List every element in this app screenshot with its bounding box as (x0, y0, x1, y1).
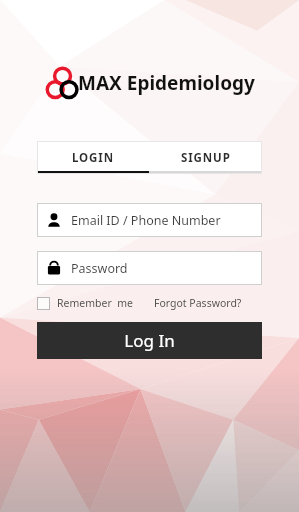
staticText: Email ID / Phone Number (71, 212, 221, 229)
button[interactable]: Log In (37, 322, 262, 359)
button[interactable]: Forgot Password? (154, 296, 242, 310)
staticText: Forgot Password? (154, 296, 242, 310)
staticText: Password (71, 260, 128, 277)
button[interactable]: Email ID or Phone Number (37, 203, 262, 237)
button[interactable]: Password (37, 251, 262, 285)
button[interactable]: SIGNUP (149, 141, 262, 174)
staticText: MAX Epidemiology (78, 70, 255, 96)
staticText: Log In (124, 329, 175, 352)
button[interactable]: Remember me (37, 296, 133, 310)
staticText: SIGNUP (181, 150, 231, 166)
staticText: Remember me (57, 296, 133, 310)
staticText: LOGIN (72, 150, 114, 166)
button[interactable]: LOGIN (37, 141, 149, 174)
